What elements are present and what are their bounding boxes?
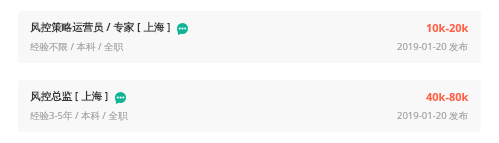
staticText: 经验不限 / 本科 / 全职 xyxy=(30,40,123,53)
button[interactable]: 风控总监 [ 上海 ] xyxy=(18,80,481,132)
button[interactable]: 风控策略运营员 / 专家 [ 上海 ] xyxy=(18,11,481,63)
staticText: 10k-20k xyxy=(426,20,469,35)
button[interactable]: Chat with recruiter xyxy=(177,23,188,35)
staticText: 风控总监 [ 上海 ] xyxy=(30,89,109,103)
button[interactable]: Chat with recruiter xyxy=(115,92,126,104)
staticText: 2019-01-20 发布 xyxy=(397,40,469,53)
staticText: 2019-01-20 发布 xyxy=(397,109,469,122)
staticText: 风控策略运营员 / 专家 [ 上海 ] xyxy=(30,20,171,34)
staticText: 经验3-5年 / 本科 / 全职 xyxy=(30,109,128,122)
staticText: 40k-80k xyxy=(426,89,469,104)
